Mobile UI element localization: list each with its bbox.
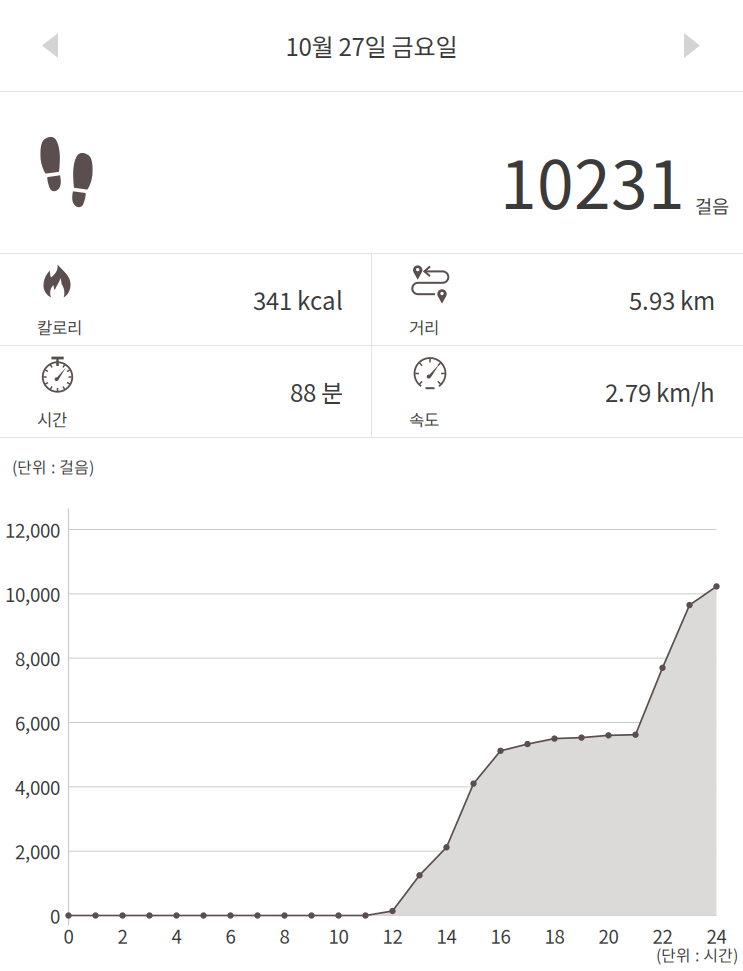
staticText: 20 xyxy=(598,922,618,949)
staticText: 24 xyxy=(706,922,726,949)
staticText: 18 xyxy=(544,922,564,949)
staticText: 속도 xyxy=(409,407,439,431)
staticText: 22 xyxy=(652,922,672,949)
staticText: 5.93 km xyxy=(629,282,715,317)
button[interactable]: 시간 xyxy=(0,346,371,437)
staticText: 0 xyxy=(50,902,60,929)
staticText: 2.79 km/h xyxy=(605,374,715,409)
staticText: 88 분 xyxy=(290,374,343,409)
staticText: 8 xyxy=(279,922,289,949)
staticText: 8,000 xyxy=(15,645,60,672)
button[interactable]: Previous day xyxy=(0,0,90,91)
staticText: 10 xyxy=(328,922,348,949)
staticText: 341 kcal xyxy=(253,282,343,317)
staticText: (단위 : 걸음) xyxy=(12,455,94,478)
staticText: 4,000 xyxy=(15,773,60,800)
staticText: 0 xyxy=(63,922,73,949)
staticText: 4 xyxy=(171,922,181,949)
button[interactable]: 거리 xyxy=(372,254,743,345)
button[interactable]: 칼로리 xyxy=(0,254,371,345)
staticText: 10,000 xyxy=(5,580,60,607)
staticText: 칼로리 xyxy=(37,315,82,339)
staticText: 시간 xyxy=(37,407,67,431)
staticText: 걸음 xyxy=(695,192,729,219)
staticText: 2 xyxy=(117,922,127,949)
staticText: 2,000 xyxy=(15,838,60,865)
staticText: 6 xyxy=(225,922,235,949)
staticText: 14 xyxy=(436,922,456,949)
staticText: (단위 : 시간) xyxy=(656,943,738,966)
staticText: 10월 27일 금요일 xyxy=(285,28,457,63)
staticText: 12,000 xyxy=(5,516,60,543)
button[interactable]: Next day xyxy=(653,0,743,91)
staticText: 6,000 xyxy=(15,709,60,736)
staticText: 10231 xyxy=(500,132,685,228)
staticText: 12 xyxy=(382,922,402,949)
staticText: 16 xyxy=(490,922,510,949)
button[interactable]: 속도 xyxy=(372,346,743,437)
staticText: 거리 xyxy=(409,315,439,339)
